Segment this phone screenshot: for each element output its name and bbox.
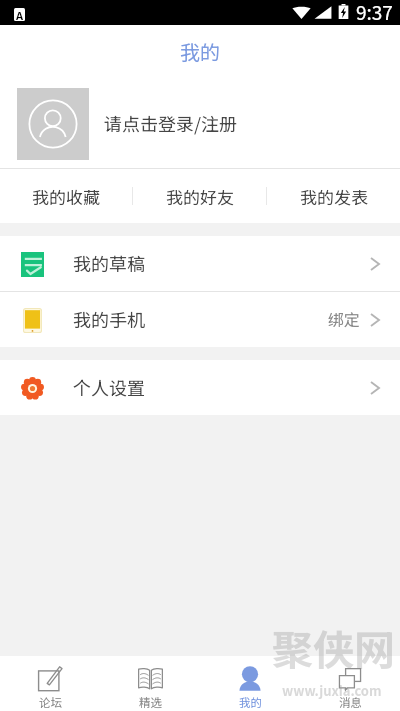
staticText: 论坛 bbox=[39, 694, 62, 711]
button[interactable]: 论坛 bbox=[0, 656, 100, 711]
staticText: 绑定 bbox=[328, 307, 361, 330]
staticText: 我的手机 bbox=[73, 306, 145, 332]
staticText: 9:37 bbox=[356, 0, 393, 23]
staticText: 个人设置 bbox=[73, 374, 145, 400]
staticText: 我的 bbox=[239, 694, 262, 711]
button[interactable]: 我的发表 bbox=[267, 169, 400, 223]
button[interactable]: 个人设置 bbox=[0, 360, 400, 415]
staticText: 我的 bbox=[180, 37, 220, 66]
staticText: 我的草稿 bbox=[73, 250, 145, 276]
staticText: 我的发表 bbox=[300, 184, 368, 209]
button[interactable]: 精选 bbox=[100, 656, 200, 711]
staticText: 我的好友 bbox=[166, 184, 234, 209]
button[interactable]: 我的好友 bbox=[133, 169, 266, 223]
button[interactable]: 我的 bbox=[200, 656, 300, 711]
button[interactable]: 请点击登录/注册 bbox=[0, 80, 400, 168]
staticText: 精选 bbox=[139, 694, 162, 711]
staticText: 消息 bbox=[339, 694, 362, 711]
staticText: www.juxia.com bbox=[282, 681, 382, 700]
button[interactable]: 消息 bbox=[300, 656, 400, 711]
staticText: 我的收藏 bbox=[32, 184, 100, 209]
button[interactable]: 我的手机 bbox=[0, 292, 400, 347]
button[interactable]: 我的草稿 bbox=[0, 236, 400, 291]
staticText: 请点击登录/注册 bbox=[104, 110, 238, 136]
button[interactable]: 我的收藏 bbox=[0, 169, 132, 223]
staticText: A bbox=[16, 7, 24, 20]
staticText: 聚侠网 bbox=[272, 617, 395, 676]
